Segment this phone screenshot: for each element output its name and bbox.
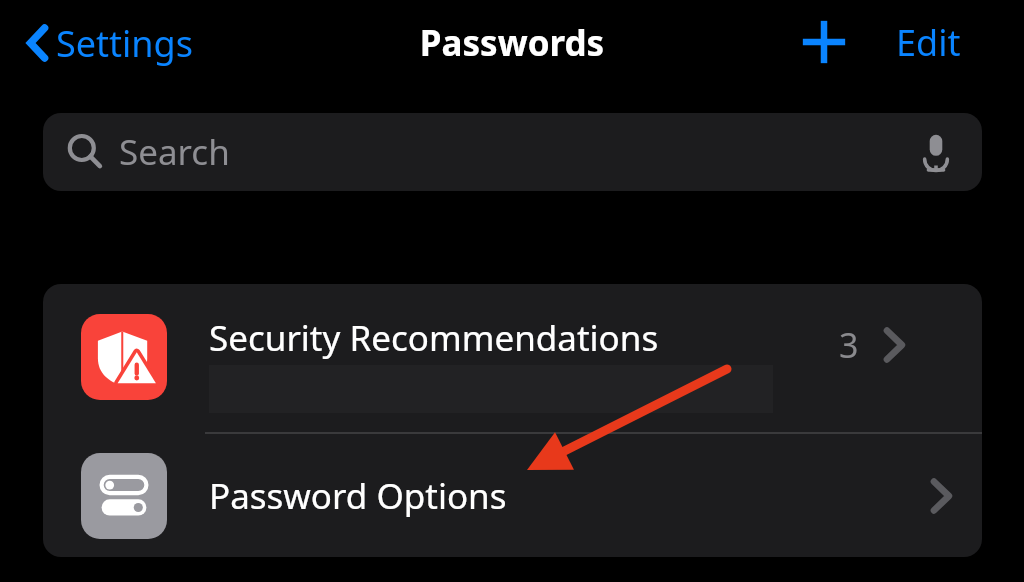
staticText: Passwords (0, 19, 1024, 67)
staticText: Security Recommendations (209, 314, 659, 362)
staticText: Password Options (209, 472, 507, 520)
button[interactable]: Password Options (43, 434, 982, 557)
button[interactable]: Voice search (912, 128, 960, 176)
button[interactable]: Add password (796, 14, 852, 70)
staticText: Search (119, 128, 230, 176)
other: Back (18, 18, 52, 68)
button[interactable]: Security Recommendations (43, 284, 982, 432)
button[interactable]: Search (43, 113, 982, 191)
button[interactable]: Edit (896, 16, 961, 68)
button[interactable]: Back (18, 12, 193, 74)
staticText: 3 (839, 322, 859, 368)
staticText: Edit (896, 18, 961, 67)
staticText: Settings (56, 19, 193, 68)
